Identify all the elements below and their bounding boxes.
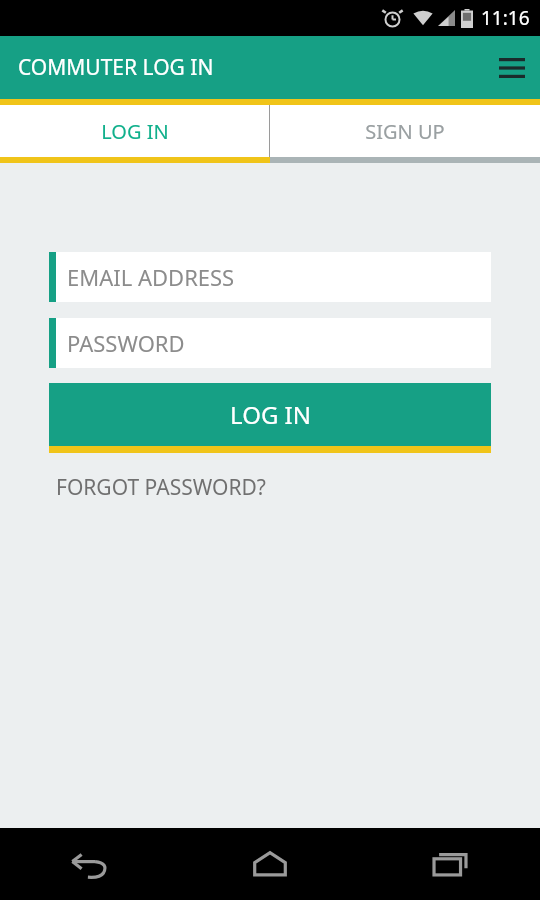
staticText: PASSWORD <box>67 328 185 358</box>
staticText: COMMUTER LOG IN <box>18 53 214 82</box>
button[interactable]: Home <box>180 828 360 900</box>
button[interactable]: EMAIL ADDRESS <box>49 252 491 302</box>
button[interactable]: PASSWORD <box>49 318 491 368</box>
staticText: LOG IN <box>230 398 311 431</box>
staticText: SIGN UP <box>365 118 445 145</box>
button[interactable]: FORGOT PASSWORD? <box>56 473 266 502</box>
button[interactable]: LOG IN <box>0 105 269 157</box>
staticText: EMAIL ADDRESS <box>67 262 235 292</box>
staticText: LOG IN <box>101 118 169 145</box>
staticText: 11:16 <box>481 5 530 31</box>
button[interactable]: Recent apps <box>360 828 540 900</box>
button[interactable]: Back <box>0 828 180 900</box>
staticText: FORGOT PASSWORD? <box>56 473 266 502</box>
button[interactable]: SIGN UP <box>270 105 540 157</box>
button[interactable]: LOG IN <box>49 383 491 453</box>
button[interactable]: Menu <box>484 40 540 96</box>
